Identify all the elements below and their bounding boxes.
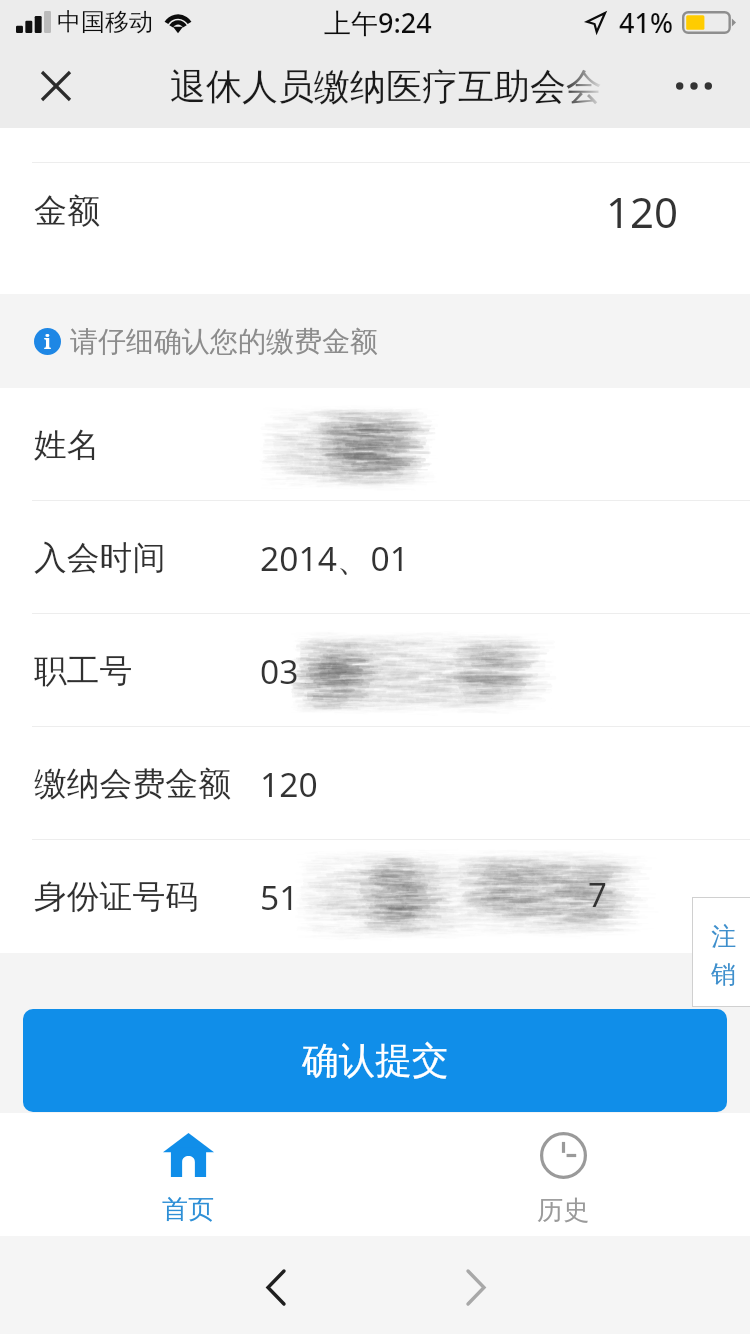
staticText: 请仔细确认您的缴费金额 [70, 324, 378, 359]
staticText: 上午9:24 [324, 4, 432, 41]
staticText: 退休人员缴纳医疗互助会 [170, 64, 566, 109]
staticText: 中国移动 [57, 7, 153, 37]
staticText: 缴纳会费金额 [34, 763, 231, 804]
staticText: 7 [588, 872, 607, 917]
staticText: 注 [711, 921, 736, 952]
staticText: 职工号 [34, 650, 133, 691]
staticText: 120 [606, 183, 679, 240]
staticText: 41% [619, 4, 673, 41]
button[interactable]: More options [654, 46, 734, 126]
staticText: 历史 [537, 1194, 589, 1227]
button[interactable]: 注 [692, 897, 750, 1007]
staticText: 会 [566, 64, 602, 109]
staticText: 51 [260, 874, 299, 920]
staticText: 身份证号码 [34, 876, 198, 917]
button[interactable]: 确认提交 [23, 1009, 727, 1112]
button[interactable]: Back [232, 1243, 320, 1331]
staticText: 姓名 [34, 424, 100, 465]
staticText: i [44, 328, 52, 355]
staticText: 销 [711, 959, 736, 990]
staticText: 03 [260, 648, 299, 694]
button[interactable]: Close [18, 48, 94, 124]
staticText: 120 [260, 761, 318, 807]
staticText: 2014、01 [260, 535, 409, 581]
button[interactable]: Forward [432, 1243, 520, 1331]
staticText: 确认提交 [302, 1038, 449, 1084]
staticText: 首页 [162, 1193, 214, 1226]
staticText: 金额 [34, 190, 100, 232]
button[interactable]: 历史 [375, 1113, 750, 1236]
staticText: 入会时间 [34, 537, 166, 578]
button[interactable]: 首页 [0, 1113, 375, 1236]
